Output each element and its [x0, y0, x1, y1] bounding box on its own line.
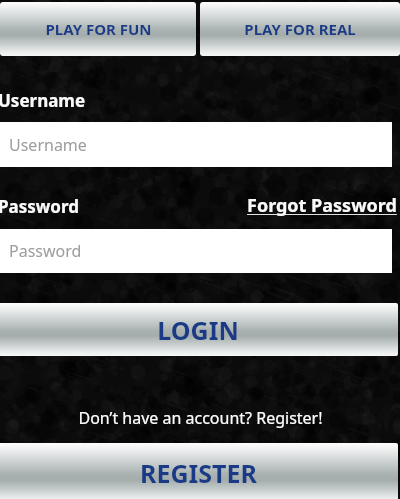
staticText: PLAY FOR REAL — [244, 19, 356, 39]
staticText: Don’t have an account? Register! — [78, 407, 323, 429]
staticText: Password — [9, 240, 82, 262]
button[interactable]: Password — [0, 229, 392, 273]
staticText: Username — [0, 89, 86, 112]
button[interactable]: PLAY FOR FUN — [0, 2, 196, 56]
staticText: LOGIN — [157, 313, 239, 347]
button[interactable]: Don’t have an account? Register! — [0, 405, 400, 431]
button[interactable]: PLAY FOR REAL — [200, 2, 400, 56]
staticText: Username — [9, 134, 87, 156]
staticText: REGISTER — [140, 456, 257, 490]
staticText: Password — [0, 195, 79, 218]
staticText: Forgot Password — [247, 193, 397, 218]
button[interactable]: Forgot Password — [247, 192, 397, 218]
button[interactable]: Username — [0, 122, 392, 167]
button[interactable]: REGISTER — [0, 443, 398, 499]
button[interactable]: LOGIN — [0, 303, 398, 356]
staticText: PLAY FOR FUN — [45, 19, 152, 39]
